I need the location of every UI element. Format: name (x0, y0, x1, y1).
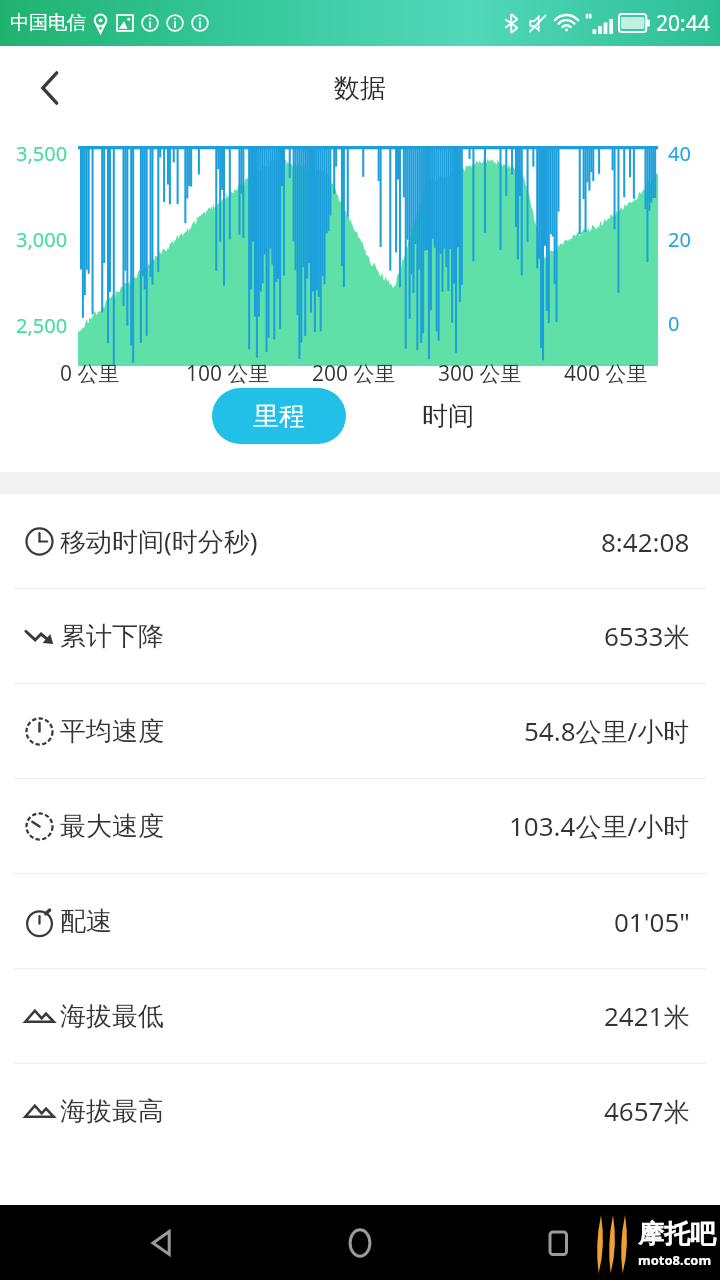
button[interactable]: 主页 (324, 1207, 396, 1279)
button[interactable]: 返回 (126, 1207, 198, 1279)
staticText: 8:42:08 (601, 524, 690, 559)
staticText: 20:44 (656, 9, 710, 38)
staticText: moto8.com (638, 1251, 712, 1269)
staticText: 20 (668, 226, 691, 253)
staticText: 100 公里 (186, 359, 270, 388)
staticText: 时间 (422, 400, 474, 433)
staticText: 累计下降 (60, 620, 164, 653)
staticText: 0 (668, 310, 680, 337)
staticText: 01'05" (614, 904, 690, 939)
staticText: 海拔最低 (60, 1000, 164, 1033)
button[interactable]: 返回 (20, 58, 80, 118)
staticText: 2421米 (604, 998, 690, 1034)
staticText: 40 (668, 140, 691, 167)
staticText: 200 公里 (312, 359, 396, 388)
button[interactable]: 平均速度 (0, 684, 720, 778)
button[interactable]: 最近任务 (522, 1207, 594, 1279)
staticText: 300 公里 (438, 359, 522, 388)
staticText: 数据 (334, 72, 386, 105)
staticText: 中国电信 (10, 11, 86, 35)
button[interactable]: 配速 (0, 874, 720, 968)
staticText: 0 公里 (60, 359, 120, 388)
staticText: 4657米 (604, 1093, 690, 1129)
button[interactable]: 海拔最低 (0, 969, 720, 1063)
staticText: 最大速度 (60, 810, 164, 843)
button[interactable]: 累计下降 (0, 589, 720, 683)
staticText: 2,500 (16, 312, 68, 339)
staticText: 里程 (253, 400, 305, 433)
staticText: 400 公里 (564, 359, 648, 388)
button[interactable]: 里程 (212, 388, 346, 444)
staticText: 3,500 (16, 140, 68, 167)
staticText: 3,000 (16, 226, 68, 253)
staticText: 平均速度 (60, 715, 164, 748)
staticText: 103.4公里/小时 (509, 808, 690, 844)
staticText: 54.8公里/小时 (524, 713, 690, 749)
staticText: 配速 (60, 905, 112, 938)
button[interactable]: 移动时间(时分秒) (0, 494, 720, 588)
staticText: 摩托吧 (638, 1218, 716, 1251)
button[interactable]: 最大速度 (0, 779, 720, 873)
button[interactable]: 海拔最高 (0, 1064, 720, 1158)
staticText: 移动时间(时分秒) (60, 523, 258, 559)
staticText: 海拔最高 (60, 1095, 164, 1128)
button[interactable]: 时间 (388, 388, 508, 444)
staticText: 6533米 (604, 618, 690, 654)
